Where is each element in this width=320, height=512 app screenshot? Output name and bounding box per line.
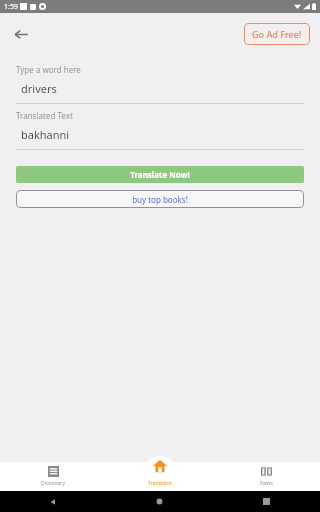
button[interactable]: Back [0,491,106,512]
staticText: bakhanni [21,127,70,142]
staticText: buy top books! [132,194,188,205]
button[interactable]: Translate Now! [16,166,304,183]
button[interactable]: News [213,462,320,491]
staticText: Translate Now! [130,169,190,180]
staticText: 1:59 [4,2,18,12]
staticText: drivers [21,81,57,96]
other: Dictionary [48,466,59,477]
button[interactable]: Dictionary [0,462,106,491]
staticText: Type a word here [16,64,81,75]
button[interactable]: Translator [106,462,213,491]
other: News [261,466,272,477]
button[interactable]: Recents [213,491,320,512]
button[interactable]: Back [6,19,36,49]
other: Translator [153,459,167,473]
staticText: News [260,480,273,487]
button[interactable]: buy top books! [16,190,304,208]
button[interactable]: Home [106,491,213,512]
staticText: Dictionary [41,480,65,487]
staticText: Translated Text [16,110,73,121]
button[interactable]: Go Ad Free! [244,23,310,45]
staticText: Translator [148,480,172,487]
staticText: Go Ad Free! [252,28,302,40]
